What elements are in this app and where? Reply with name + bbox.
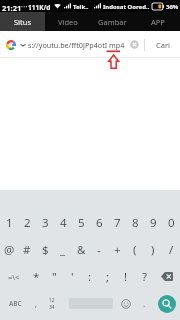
button[interactable]: :	[81, 263, 99, 290]
button[interactable]: APP	[135, 12, 180, 31]
button[interactable]: 0	[162, 209, 180, 236]
button[interactable]: #	[18, 236, 36, 263]
button[interactable]: Situs	[0, 12, 45, 31]
staticText: 5	[78, 215, 85, 231]
button[interactable]: 3	[36, 209, 54, 236]
staticText: Situs	[14, 17, 31, 27]
staticText: 2	[24, 215, 31, 231]
button[interactable]: )	[144, 236, 162, 263]
staticText: APP	[151, 17, 165, 27]
staticText: *	[33, 269, 40, 285]
staticText: Telk..	[73, 3, 89, 11]
button[interactable]: 9	[144, 209, 162, 236]
button[interactable]: Cari	[145, 31, 180, 58]
staticText: +	[114, 242, 121, 258]
button[interactable]: ?	[135, 263, 153, 290]
staticText: ABC	[9, 299, 22, 308]
button[interactable]: /	[162, 236, 180, 263]
button[interactable]: 2	[18, 209, 36, 236]
button[interactable]: _	[54, 236, 72, 263]
button[interactable]: Google	[6, 40, 16, 50]
staticText: !	[124, 269, 128, 285]
button[interactable]: @	[0, 236, 18, 263]
button[interactable]: $	[36, 236, 54, 263]
staticText: /	[169, 242, 174, 258]
staticText: 6	[96, 215, 103, 231]
staticText: -	[97, 242, 101, 258]
staticText: ,	[35, 298, 38, 309]
staticText: )	[151, 242, 155, 258]
staticText: 1	[6, 215, 13, 231]
staticText: "	[52, 269, 57, 285]
staticText: =\<	[8, 272, 20, 282]
button[interactable]: Backspace	[153, 263, 180, 290]
button[interactable]: Gambar	[90, 12, 135, 31]
staticText: 21:21	[2, 3, 22, 13]
button[interactable]: 1	[0, 209, 18, 236]
staticText: 9	[150, 215, 157, 231]
staticText: 12	[49, 297, 55, 304]
button[interactable]: 6	[90, 209, 108, 236]
staticText: 8	[132, 215, 139, 231]
staticText: #	[23, 242, 31, 258]
staticText: 36%	[166, 3, 179, 11]
staticText: (	[133, 242, 137, 258]
staticText: 0	[168, 215, 175, 231]
button[interactable]: 8	[126, 209, 144, 236]
staticText: Video	[58, 17, 78, 27]
staticText: $	[42, 242, 49, 258]
button[interactable]: +	[108, 236, 126, 263]
button[interactable]: !	[117, 263, 135, 290]
staticText: Indosat Oored..	[103, 3, 150, 11]
button[interactable]: ,	[31, 290, 42, 317]
button[interactable]: Engine dropdown	[20, 42, 26, 48]
button[interactable]: *	[27, 263, 45, 290]
staticText: _	[60, 242, 66, 258]
button[interactable]: ABC	[0, 290, 31, 317]
button[interactable]: 12	[42, 290, 61, 317]
staticText: Gambar	[98, 17, 127, 27]
button[interactable]: =\<	[0, 263, 27, 290]
button[interactable]: Video	[45, 12, 90, 31]
button[interactable]: -	[90, 236, 108, 263]
staticText: '	[71, 269, 74, 285]
staticText: s://youtu.be/fft0JPp4otI mp4	[28, 40, 125, 50]
staticText: 4	[60, 215, 67, 231]
staticText: :	[88, 269, 92, 285]
button[interactable]: '	[63, 263, 81, 290]
button[interactable]: (	[126, 236, 144, 263]
button[interactable]: &	[72, 236, 90, 263]
button[interactable]: Search	[156, 290, 180, 317]
staticText: &	[77, 242, 86, 258]
staticText: .	[143, 298, 146, 309]
button[interactable]: Emoji	[120, 290, 132, 317]
staticText: @	[4, 242, 15, 258]
staticText: 3	[42, 215, 49, 231]
button[interactable]: ;	[99, 263, 117, 290]
staticText: 7	[114, 215, 121, 231]
button[interactable]: 4	[54, 209, 72, 236]
button[interactable]: 5	[72, 209, 90, 236]
button[interactable]: "	[45, 263, 63, 290]
button[interactable]: 7	[108, 209, 126, 236]
staticText: 111K/d	[28, 3, 51, 12]
staticText: ?	[142, 269, 147, 285]
staticText: Cari	[156, 40, 170, 50]
staticText: ;	[106, 269, 110, 285]
staticText: 34	[49, 304, 55, 311]
button[interactable]: Clear text	[125, 31, 144, 58]
